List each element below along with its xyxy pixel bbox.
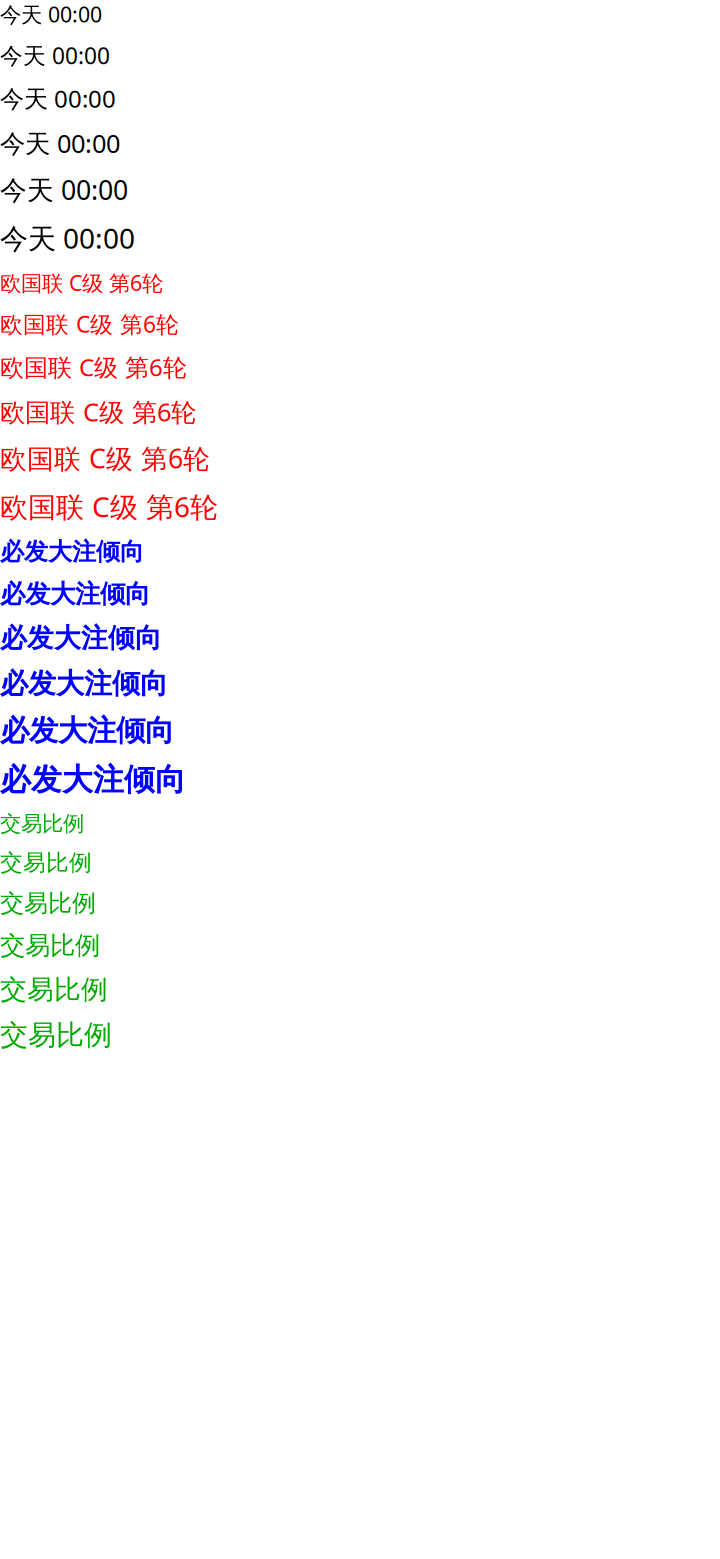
staticText: 欧国联 C级 第6轮 — [0, 268, 163, 297]
staticText: 欧国联 C级 第6轮 — [0, 440, 210, 476]
staticText: 欧国联 C级 第6轮 — [0, 309, 179, 339]
staticText: 今天 00:00 — [0, 40, 110, 70]
staticText: 今天 00:00 — [0, 0, 102, 28]
staticText: 欧国联 C级 第6轮 — [0, 488, 218, 525]
staticText: 今天 00:00 — [0, 82, 116, 114]
staticText: 今天 00:00 — [0, 172, 128, 207]
staticText: 交易比例 — [0, 930, 100, 961]
staticText: 欧国联 C级 第6轮 — [0, 351, 187, 383]
staticText: 交易比例 — [0, 849, 92, 876]
staticText: 必发大注倾向 — [0, 761, 186, 799]
staticText: 今天 00:00 — [0, 219, 135, 257]
staticText: 今天 00:00 — [0, 126, 120, 160]
staticText: 欧国联 C级 第6轮 — [0, 395, 196, 428]
staticText: 必发大注倾向 — [0, 666, 168, 701]
staticText: 交易比例 — [0, 1018, 112, 1052]
staticText: 必发大注倾向 — [0, 537, 144, 567]
staticText: 必发大注倾向 — [0, 579, 150, 610]
staticText: 必发大注倾向 — [0, 622, 162, 654]
staticText: 必发大注倾向 — [0, 713, 174, 749]
staticText: 交易比例 — [0, 810, 84, 837]
staticText: 交易比例 — [0, 973, 108, 1006]
staticText: 交易比例 — [0, 889, 96, 918]
